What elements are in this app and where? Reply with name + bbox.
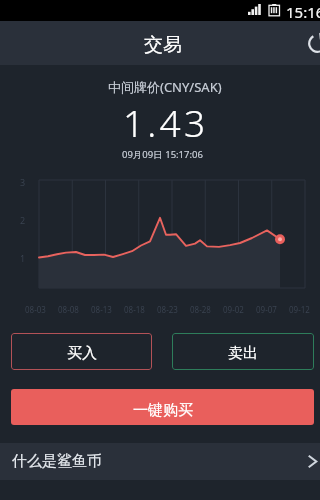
staticText: 08-23 (157, 304, 178, 315)
staticText: 09-07 (256, 304, 277, 315)
button[interactable]: 卖出 (172, 333, 314, 370)
button[interactable]: Refresh (295, 21, 320, 65)
staticText: 交易 (144, 33, 182, 57)
staticText: 卖出 (228, 344, 258, 363)
button[interactable]: 一键购买 (11, 389, 314, 425)
staticText: 15:16 (286, 2, 320, 22)
staticText: 什么是鲨鱼币 (12, 452, 102, 471)
staticText: 1 (20, 252, 26, 264)
button[interactable]: 什么是鲨鱼币 (0, 443, 320, 480)
staticText: 09-12 (289, 304, 310, 315)
staticText: 09-02 (223, 304, 244, 315)
staticText: 08-18 (124, 304, 145, 315)
staticText: 买入 (67, 344, 97, 363)
staticText: 中间牌价(CNY/SAK) (108, 78, 222, 96)
staticText: 08-28 (190, 304, 211, 315)
staticText: 09月09日 15:17:06 (122, 148, 203, 161)
staticText: 2 (20, 214, 26, 226)
staticText: 08-03 (25, 304, 46, 315)
staticText: 一键购买 (133, 401, 193, 420)
staticText: 08-08 (58, 304, 79, 315)
staticText: 3 (20, 176, 26, 188)
button[interactable]: 买入 (11, 333, 152, 370)
staticText: 1.43 (123, 97, 209, 147)
staticText: 08-13 (91, 304, 112, 315)
